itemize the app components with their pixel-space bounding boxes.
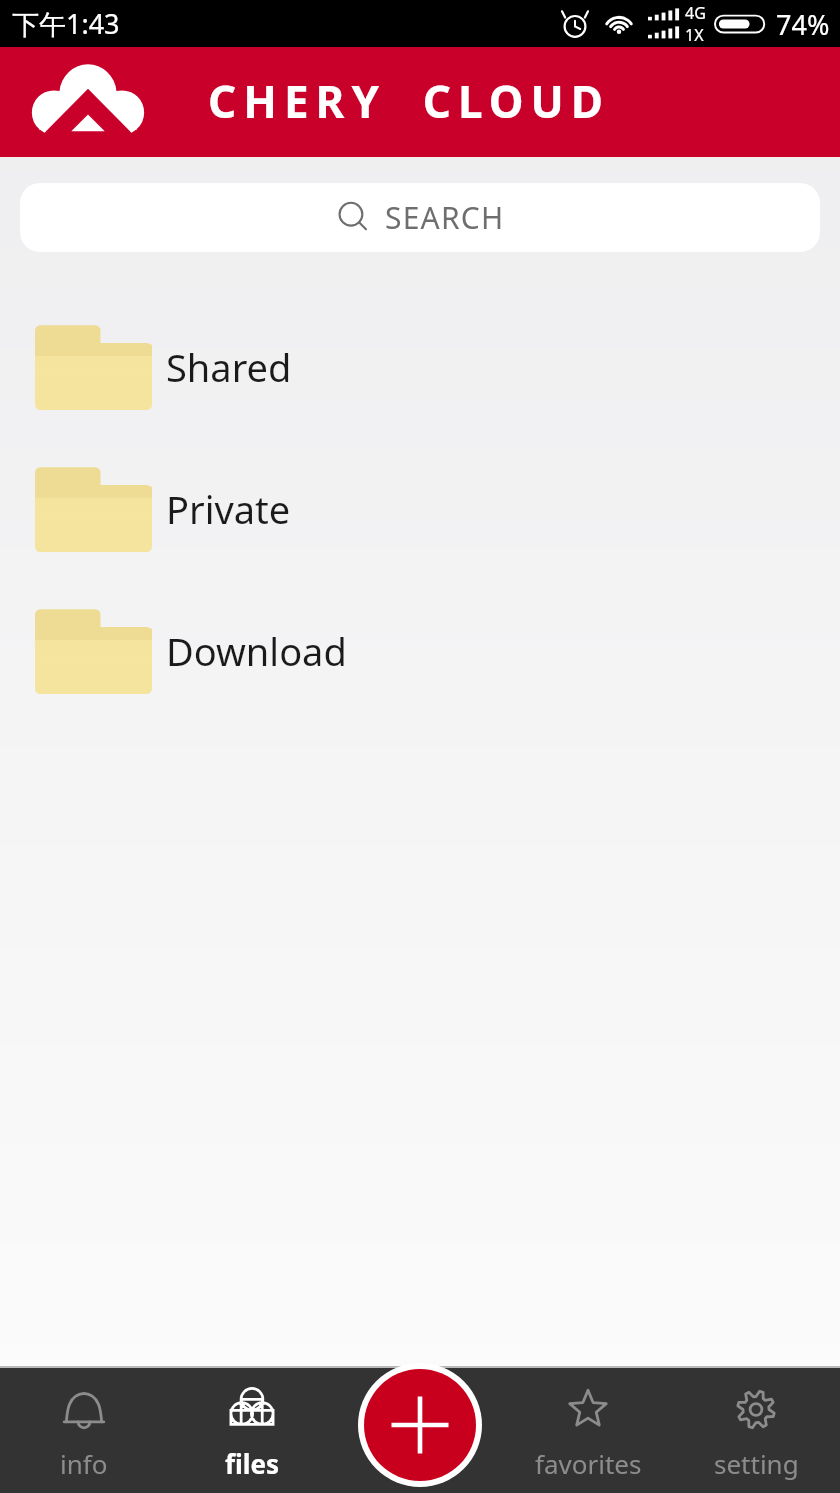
- staticText: 74%: [776, 6, 830, 43]
- staticText: CHERY CLOUD: [208, 71, 611, 131]
- staticText: Shared: [166, 341, 292, 393]
- button[interactable]: SEARCH: [20, 183, 820, 252]
- staticText: Download: [166, 625, 347, 677]
- button[interactable]: files: [168, 1368, 336, 1493]
- button[interactable]: setting: [672, 1368, 840, 1493]
- staticText: info: [60, 1446, 108, 1481]
- staticText: files: [225, 1446, 280, 1481]
- other: Chery Cloud logo: [34, 63, 142, 141]
- button[interactable]: Shared: [0, 324, 840, 410]
- button[interactable]: Private: [0, 466, 840, 552]
- staticText: 4G: [685, 2, 706, 24]
- button[interactable]: Download: [0, 608, 840, 694]
- staticText: SEARCH: [385, 197, 505, 238]
- staticText: Private: [166, 483, 291, 535]
- staticText: favorites: [535, 1446, 642, 1481]
- button[interactable]: favorites: [504, 1368, 672, 1493]
- button[interactable]: info: [0, 1368, 168, 1493]
- staticText: setting: [714, 1446, 799, 1481]
- staticText: 下午1:43: [12, 5, 120, 42]
- staticText: 1X: [685, 24, 704, 46]
- button[interactable]: Add: [358, 1363, 482, 1487]
